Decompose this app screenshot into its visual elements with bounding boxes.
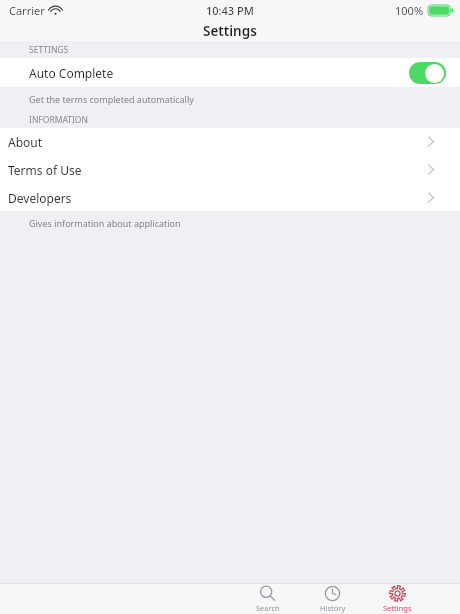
- staticText: Terms of Use: [8, 162, 82, 178]
- button[interactable]: History: [300, 584, 365, 614]
- staticText: 100%: [395, 3, 424, 18]
- staticText: 10:43 PM: [206, 3, 254, 18]
- staticText: Developers: [8, 190, 72, 206]
- button[interactable]: Search: [235, 584, 300, 614]
- button[interactable]: Settings: [365, 584, 430, 614]
- staticText: Search: [256, 603, 280, 613]
- staticText: About: [8, 134, 43, 150]
- button[interactable]: Terms of Use: [0, 156, 460, 183]
- staticText: Get the terms completed automatically: [29, 93, 194, 105]
- staticText: Carrier: [9, 3, 45, 18]
- button[interactable]: About: [0, 128, 460, 155]
- staticText: Gives information about application: [29, 217, 181, 229]
- staticText: Settings: [203, 22, 257, 40]
- staticText: Auto Complete: [29, 65, 114, 81]
- staticText: SETTINGS: [29, 44, 69, 56]
- staticText: History: [320, 603, 346, 613]
- staticText: Settings: [383, 603, 412, 613]
- button[interactable]: Developers: [0, 184, 460, 211]
- button[interactable]: Auto Complete: [0, 58, 460, 87]
- staticText: INFORMATION: [29, 114, 88, 126]
- button[interactable]: Auto Complete toggle: [409, 62, 446, 84]
